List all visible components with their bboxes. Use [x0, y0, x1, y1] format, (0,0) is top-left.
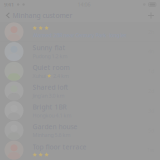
staticText: Wanted: 2BR near Century Park · long let — [32, 32, 126, 39]
staticText: Shared loft — [32, 83, 68, 92]
button[interactable]: Garden house — [0, 120, 160, 140]
button[interactable]: Wanted: 2BR near Century Park · long let — [0, 22, 160, 42]
button[interactable]: Top floor terrace — [0, 140, 160, 160]
button[interactable]: Bright 1BR — [0, 101, 160, 120]
staticText: Bright 1BR — [32, 102, 66, 111]
staticText: Top floor terrace — [32, 142, 86, 151]
button[interactable]: Quiet room — [0, 61, 160, 81]
staticText: Garden house — [32, 122, 77, 131]
staticText: 9:41 — [4, 1, 14, 8]
button[interactable]: Shared loft — [0, 81, 160, 101]
staticText: Minhang customer — [12, 11, 72, 20]
button[interactable]: Minhang customer — [0, 9, 77, 22]
staticText: Quiet room — [32, 63, 69, 72]
button[interactable]: Sunny flat — [0, 42, 160, 61]
staticText: Sunny flat — [32, 43, 65, 52]
